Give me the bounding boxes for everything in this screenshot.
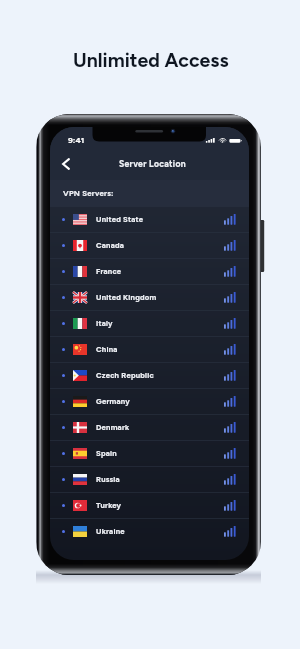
button[interactable]: France bbox=[50, 258, 249, 284]
button[interactable]: Czech Republic bbox=[50, 362, 249, 388]
staticText: Canada bbox=[96, 241, 125, 250]
button[interactable]: Italy bbox=[50, 310, 249, 336]
staticText: Germany bbox=[96, 397, 130, 406]
button[interactable]: Canada bbox=[50, 232, 249, 258]
staticText: Russia bbox=[96, 475, 120, 484]
staticText: China bbox=[96, 345, 118, 354]
staticText: France bbox=[96, 267, 122, 276]
button[interactable]: Turkey bbox=[50, 492, 249, 518]
button[interactable]: Spain bbox=[50, 440, 249, 466]
staticText: United Kingdom bbox=[96, 293, 157, 302]
button[interactable]: Germany bbox=[50, 388, 249, 414]
staticText: Denmark bbox=[96, 423, 130, 432]
staticText: Czech Republic bbox=[96, 371, 154, 380]
button[interactable]: Back bbox=[52, 147, 80, 180]
button[interactable]: Russia bbox=[50, 466, 249, 492]
button[interactable]: Ukraine bbox=[50, 518, 249, 544]
staticText: VPN Servers: bbox=[63, 189, 114, 198]
staticText: Server Location bbox=[119, 159, 186, 169]
button[interactable]: China bbox=[50, 336, 249, 362]
staticText: Spain bbox=[96, 449, 117, 458]
staticText: Unlimited Access bbox=[73, 48, 229, 71]
staticText: Italy bbox=[96, 319, 113, 328]
staticText: United State bbox=[96, 215, 144, 224]
button[interactable]: Denmark bbox=[50, 414, 249, 440]
staticText: Turkey bbox=[96, 501, 122, 510]
button[interactable]: United State bbox=[50, 206, 249, 232]
staticText: Ukraine bbox=[96, 527, 125, 536]
staticText: 9:41 bbox=[68, 135, 85, 145]
button[interactable]: United Kingdom bbox=[50, 284, 249, 310]
